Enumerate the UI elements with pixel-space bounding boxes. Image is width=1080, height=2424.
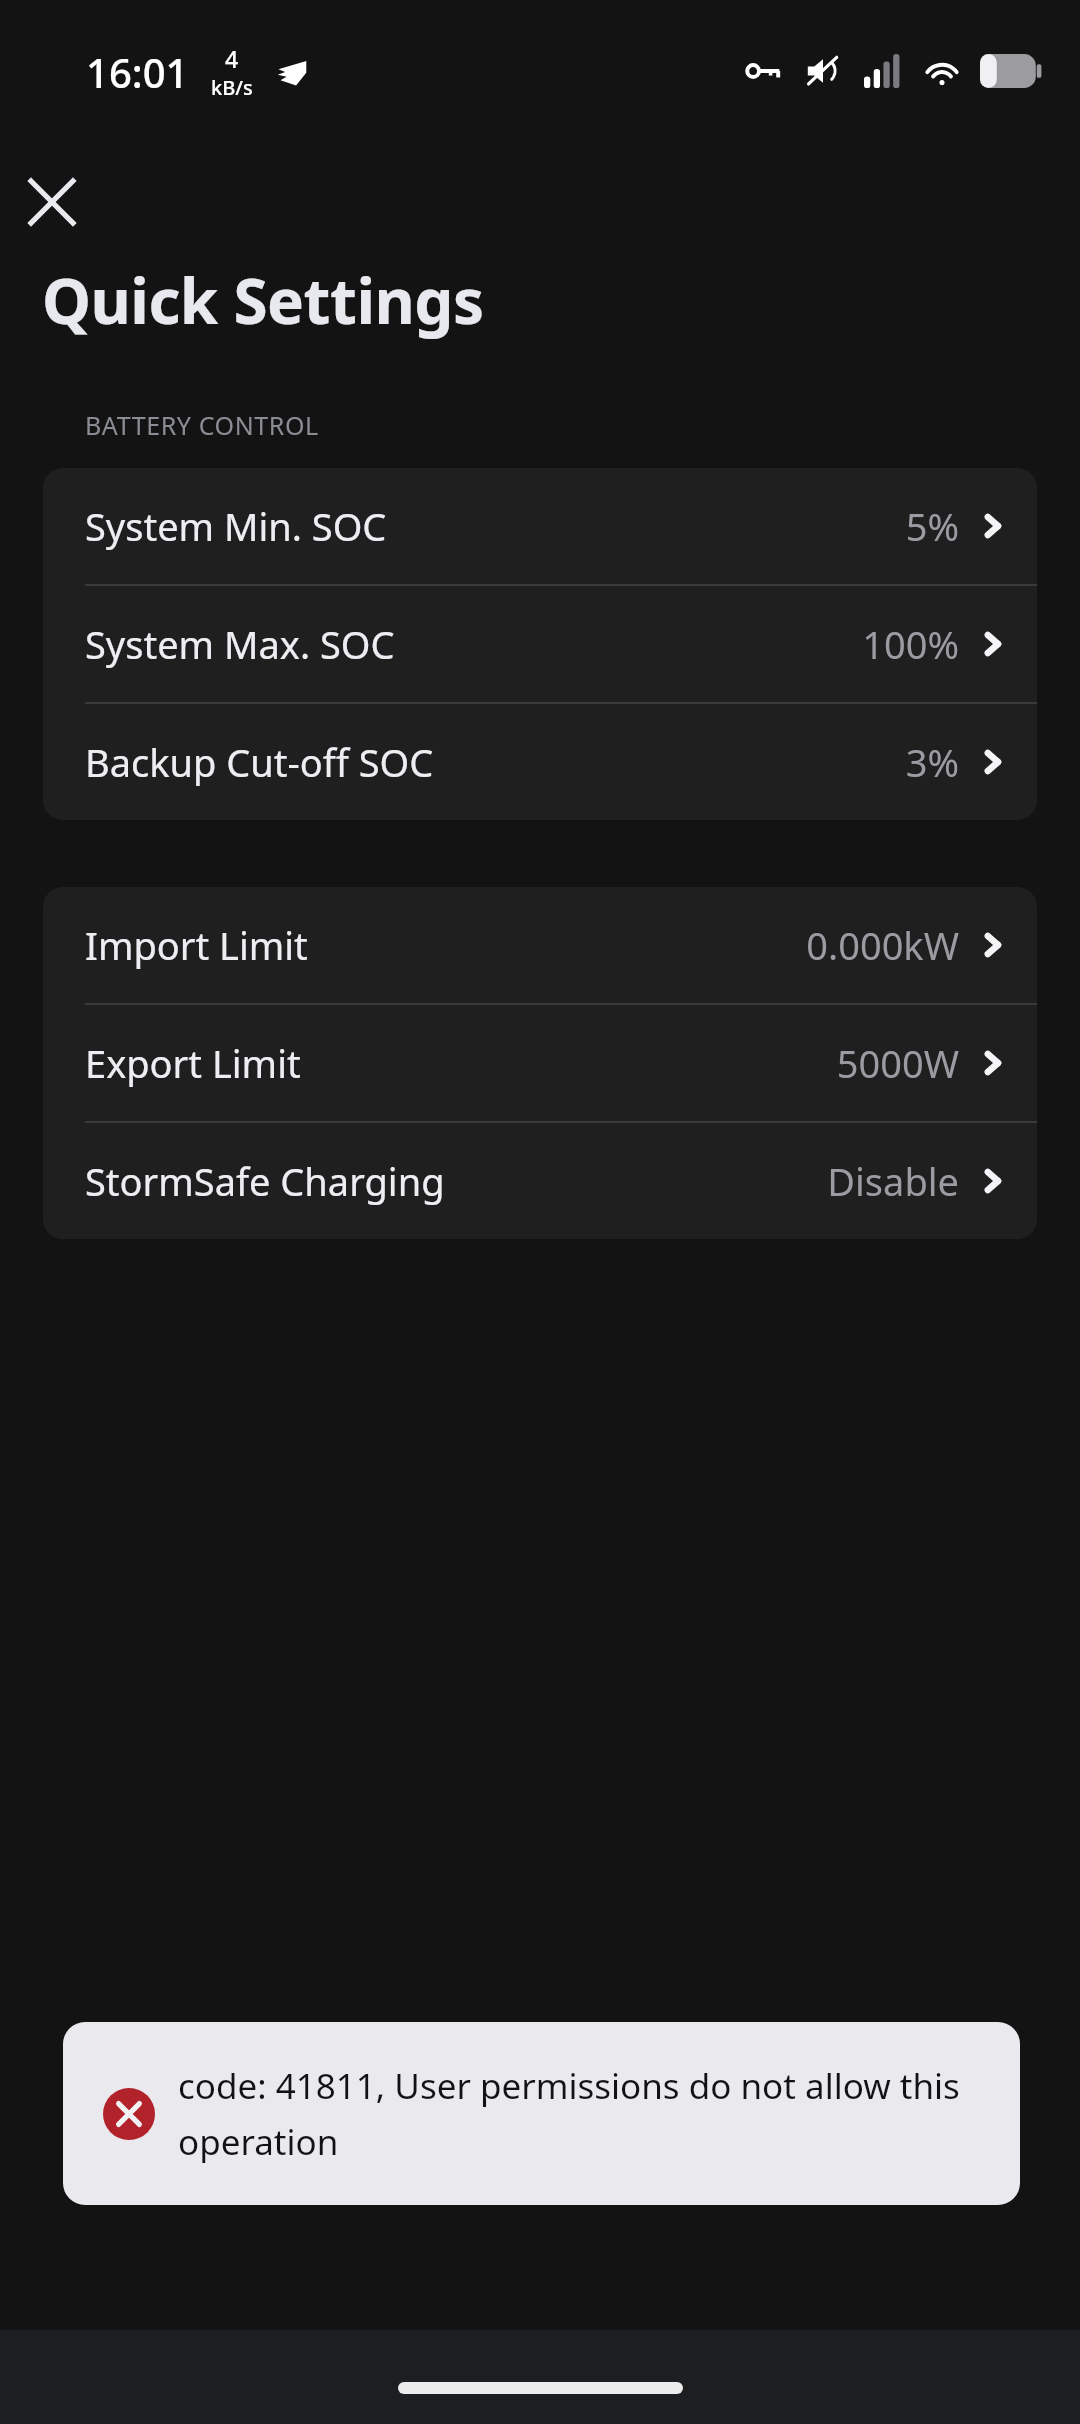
staticText: 4 [225,43,239,74]
staticText: Quick Settings [42,258,484,342]
button[interactable]: Close [18,168,86,236]
staticText: System Min. SOC [85,500,387,552]
button[interactable]: StormSafe Charging [43,1123,1037,1239]
staticText: Disable [827,1155,959,1207]
staticText: code: 41811, User permissions do not all… [178,2062,968,2165]
staticText: 5% [905,500,959,552]
staticText: kB/s [211,74,253,101]
button[interactable]: Import Limit [43,887,1037,1003]
staticText: 5000W [836,1037,959,1089]
staticText: Import Limit [85,919,308,971]
staticText: Export Limit [85,1037,301,1089]
staticText: StormSafe Charging [85,1155,445,1207]
staticText: Backup Cut-off SOC [85,736,434,788]
button[interactable]: code: 41811, User permissions do not all… [63,2022,1020,2205]
button[interactable]: Backup Cut-off SOC [43,704,1037,820]
staticText: 100% [862,618,959,670]
staticText: 16:01 [86,45,189,99]
staticText: 3% [905,736,959,788]
staticText: BATTERY CONTROL [85,408,319,442]
button[interactable]: Export Limit [43,1005,1037,1121]
button[interactable]: System Max. SOC [43,586,1037,702]
staticText: 0.000kW [806,919,959,971]
staticText: System Max. SOC [85,618,395,670]
button[interactable]: System Min. SOC [43,468,1037,584]
